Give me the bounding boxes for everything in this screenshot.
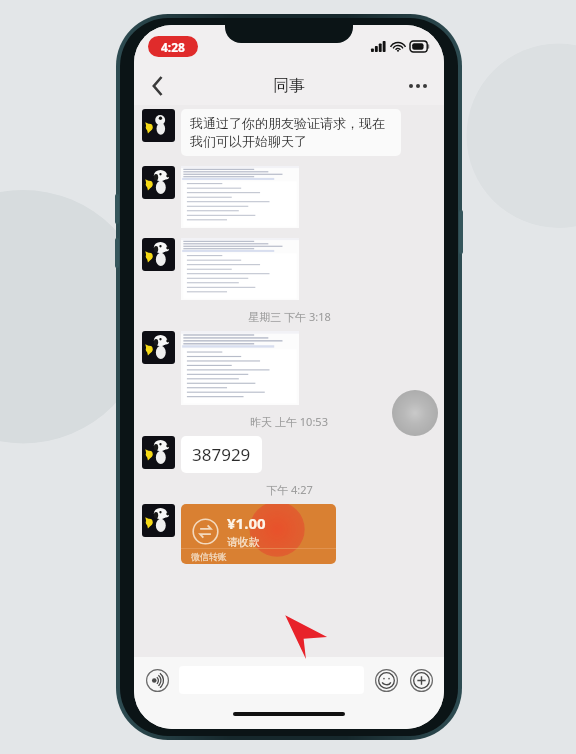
staticText: 昨天 上午 10:53	[250, 414, 328, 429]
staticText: ¥1.00	[227, 513, 266, 533]
staticText: 请收款	[227, 535, 260, 549]
staticText: 4:28	[161, 39, 185, 55]
button[interactable]: Contact avatar	[142, 109, 175, 142]
button[interactable]: Screenshot image	[181, 166, 299, 228]
button[interactable]: Contact avatar	[142, 436, 175, 469]
button[interactable]: ¥1.00	[181, 504, 336, 564]
button[interactable]: Emoji	[371, 665, 401, 695]
button[interactable]: Contact avatar	[142, 238, 175, 271]
staticText: 星期三 下午 3:18	[248, 309, 331, 324]
staticText: 我通过了你的朋友验证请求，现在我们可以开始聊天了	[190, 115, 392, 150]
button[interactable]: Contact avatar	[142, 331, 175, 364]
button[interactable]: Screenshot image	[181, 331, 299, 405]
button[interactable]: Contact avatar	[142, 504, 175, 537]
button[interactable]: Back	[138, 67, 178, 105]
button[interactable]: More options	[398, 67, 438, 105]
staticText: 387929	[192, 443, 251, 466]
button[interactable]: Screenshot image	[181, 238, 299, 300]
staticText: 下午 4:27	[266, 482, 313, 497]
button[interactable]: More functions	[406, 665, 436, 695]
staticText: 同事	[273, 76, 305, 96]
button[interactable]: Floating assistive touch	[392, 390, 438, 436]
button[interactable]: Contact avatar	[142, 166, 175, 199]
staticText: 微信转账	[191, 551, 227, 562]
button[interactable]: Voice input	[142, 665, 172, 695]
